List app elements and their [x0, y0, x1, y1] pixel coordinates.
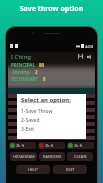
button[interactable]: HELP: [16, 165, 50, 174]
button[interactable]: Save: [76, 52, 85, 61]
staticText: EXIT: [66, 167, 75, 172]
staticText: Save throw option: [0, 4, 103, 14]
staticText: 8: [43, 76, 46, 82]
button[interactable]: CLEAN: [67, 152, 93, 161]
button[interactable]: 1-Save Throw: [21, 106, 82, 116]
button[interactable]: 3-Exit: [21, 124, 82, 134]
button[interactable]: EXIT: [53, 165, 87, 174]
staticText: SECONDARY: [11, 76, 39, 82]
button[interactable]: 2-Saved: [21, 115, 82, 125]
staticText: -Moving-: [11, 69, 31, 75]
staticText: 2-Saved: [21, 117, 40, 124]
staticText: 2k ft: [74, 143, 83, 148]
staticText: 3-Exit: [21, 126, 34, 133]
staticText: 80: [39, 62, 45, 68]
staticText: Select an option:: [21, 96, 71, 104]
button[interactable]: Sound: [85, 52, 94, 61]
staticText: HELP: [28, 167, 38, 172]
staticText: PRINCIPAL: [11, 62, 35, 68]
staticText: HEXAGRAM: [13, 154, 35, 159]
staticText: 2: [35, 69, 38, 75]
button[interactable]: 2k ft: [68, 142, 93, 149]
staticText: 2k ft: [45, 143, 54, 148]
button[interactable]: 2k ft: [39, 142, 64, 149]
button[interactable]: HEXAGRAM: [10, 152, 37, 161]
staticText: CLEAN: [74, 154, 87, 159]
button[interactable]: 2k ft: [10, 142, 35, 149]
staticText: RANDOM: [43, 154, 61, 159]
staticText: I Ching: [11, 53, 32, 61]
staticText: 4:03: [85, 44, 93, 49]
staticText: 2k ft: [16, 143, 25, 148]
staticText: 1-Save Throw: [21, 108, 53, 115]
button[interactable]: RANDOM: [39, 152, 65, 161]
button[interactable]: Select an option:: [17, 94, 86, 139]
